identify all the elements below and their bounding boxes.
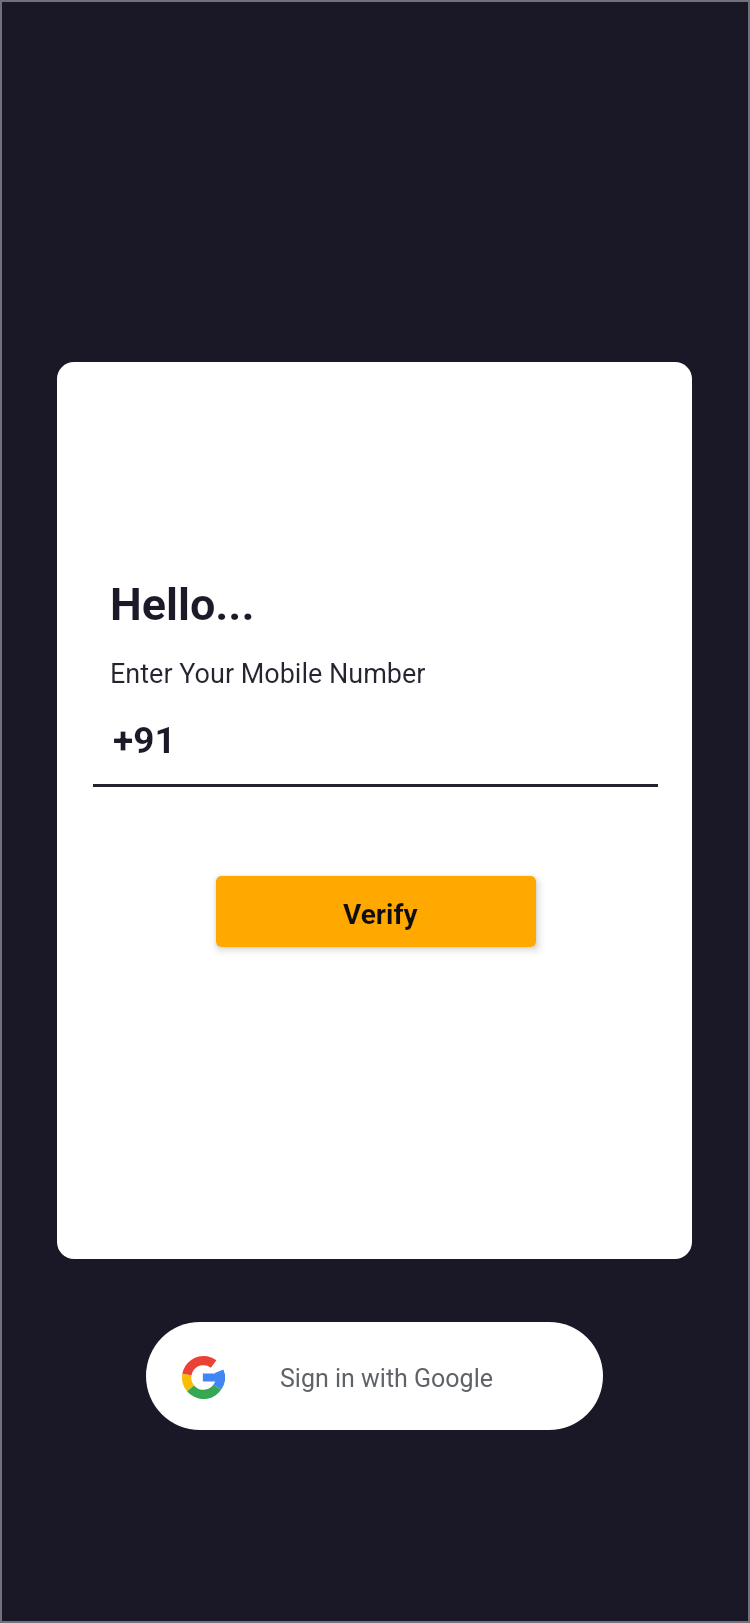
staticText: Enter Your Mobile Number [110, 658, 426, 690]
staticText: Hello... [110, 578, 255, 631]
staticText: Sign in with Google [280, 1364, 493, 1393]
button[interactable]: Google logo [146, 1322, 603, 1430]
button[interactable]: Verify [216, 876, 536, 947]
staticText: Verify [343, 898, 418, 931]
staticText: +91 [113, 719, 176, 762]
other: Google logo [182, 1356, 225, 1399]
button[interactable]: +91 [93, 706, 658, 787]
